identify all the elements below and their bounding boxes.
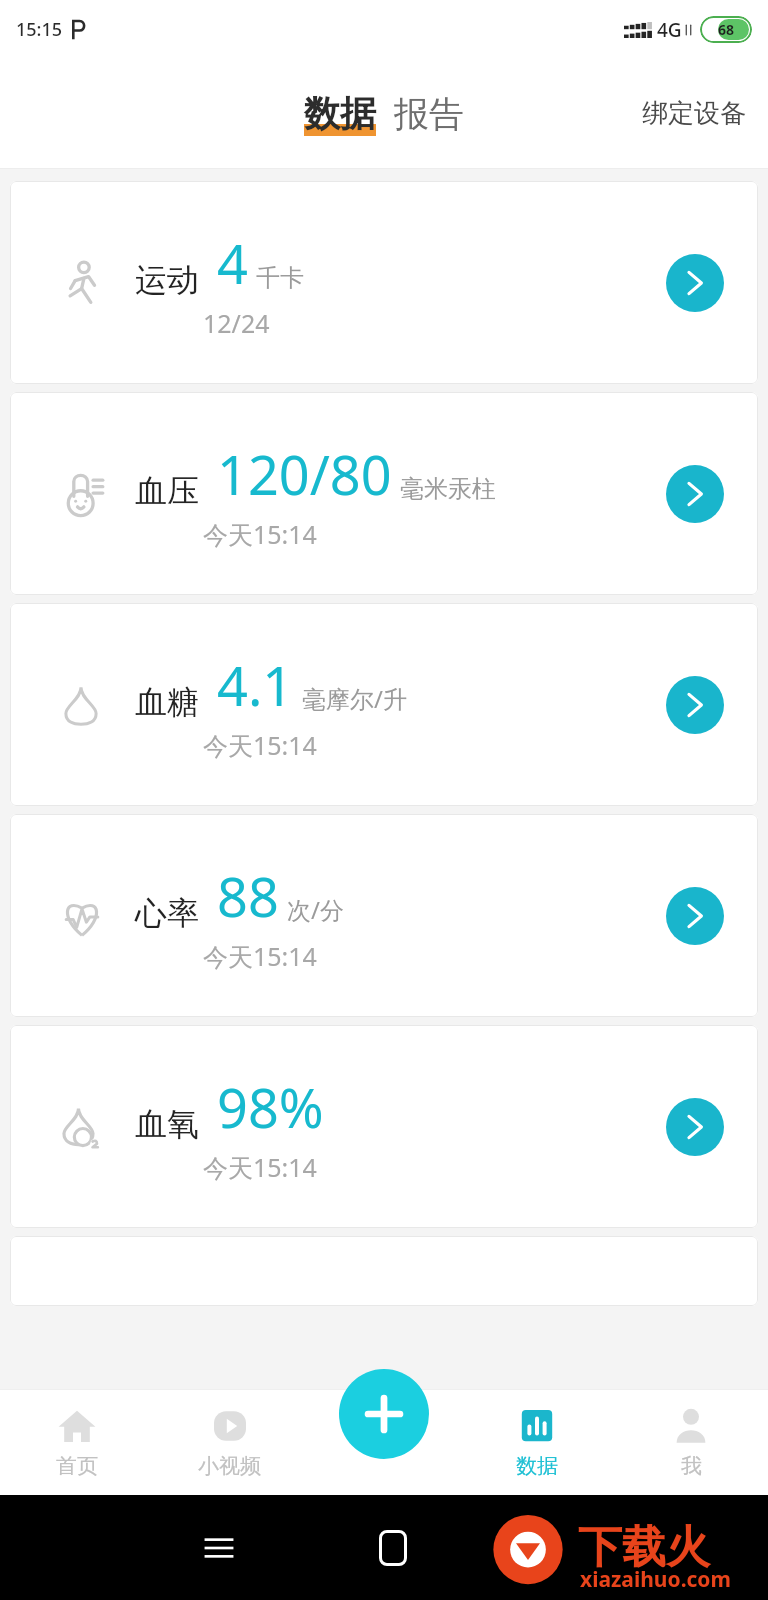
staticText: 次/分 bbox=[287, 893, 344, 926]
staticText: 心率 bbox=[135, 893, 199, 933]
button[interactable]: Home bbox=[379, 1530, 407, 1566]
button[interactable]: 添加 bbox=[339, 1369, 429, 1459]
staticText: 4.1 bbox=[217, 648, 294, 722]
staticText: 今天15:14 bbox=[203, 1150, 317, 1184]
staticText: xiazaihuo.com bbox=[580, 1565, 731, 1594]
button[interactable]: 首页 bbox=[0, 1389, 153, 1495]
button[interactable]: 数据 bbox=[460, 1389, 614, 1495]
button[interactable]: 血糖 详情 bbox=[666, 676, 724, 734]
button[interactable]: 运动 bbox=[10, 181, 758, 384]
button[interactable]: 数据 bbox=[304, 91, 376, 136]
staticText: 今天15:14 bbox=[203, 728, 317, 762]
staticText: 毫摩尔/升 bbox=[302, 682, 407, 715]
staticText: 我 bbox=[681, 1453, 702, 1479]
staticText: 15:15 bbox=[16, 17, 63, 42]
button[interactable]: 绑定设备 bbox=[642, 97, 746, 130]
staticText: 血压 bbox=[135, 471, 199, 511]
button[interactable]: 我 bbox=[614, 1389, 768, 1495]
staticText: 今天15:14 bbox=[203, 939, 317, 973]
button[interactable]: 报告 bbox=[394, 92, 464, 136]
staticText: 运动 bbox=[135, 260, 199, 300]
staticText: 小视频 bbox=[198, 1453, 261, 1479]
staticText: 数据 bbox=[516, 1453, 558, 1479]
button[interactable]: 心率 bbox=[10, 814, 758, 1017]
staticText: 数据 bbox=[304, 91, 376, 136]
staticText: 千卡 bbox=[256, 263, 304, 293]
staticText: 120/80 bbox=[217, 437, 392, 511]
staticText: 4 bbox=[217, 226, 248, 300]
button[interactable]: 运动 详情 bbox=[666, 254, 724, 312]
button[interactable]: 血氧 bbox=[10, 1025, 758, 1228]
staticText: 下载火 bbox=[578, 1520, 710, 1575]
button[interactable]: 血糖 bbox=[10, 603, 758, 806]
button[interactable]: 心率 详情 bbox=[666, 887, 724, 945]
button[interactable] bbox=[10, 1236, 758, 1306]
staticText: 毫米汞柱 bbox=[400, 474, 496, 504]
button[interactable]: 血压 bbox=[10, 392, 758, 595]
staticText: 98% bbox=[217, 1070, 324, 1144]
button[interactable]: 小视频 bbox=[153, 1389, 306, 1495]
staticText: 血糖 bbox=[135, 682, 199, 722]
button[interactable]: 血压 详情 bbox=[666, 465, 724, 523]
staticText: 88 bbox=[217, 859, 279, 933]
staticText: 血氧 bbox=[135, 1104, 199, 1144]
staticText: 4G bbox=[657, 17, 682, 43]
button[interactable]: 血氧 详情 bbox=[666, 1098, 724, 1156]
staticText: 68 bbox=[718, 20, 735, 39]
staticText: 12/24 bbox=[203, 306, 270, 340]
staticText: 今天15:14 bbox=[203, 517, 317, 551]
staticText: 首页 bbox=[56, 1453, 98, 1479]
